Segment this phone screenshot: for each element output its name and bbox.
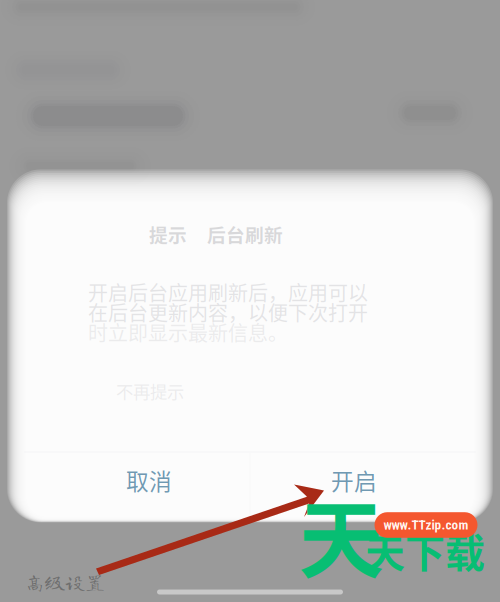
staticText: 天下载	[365, 521, 485, 579]
button[interactable]: 开启	[241, 446, 467, 513]
staticText: 不再提示	[116, 378, 184, 404]
staticText: 提示	[149, 220, 187, 247]
staticText: 时立即显示最新信息。	[88, 317, 288, 346]
staticText: www.TTzip.com	[383, 517, 468, 533]
staticText: 高级设置	[25, 572, 105, 592]
button[interactable]: 取消	[36, 446, 262, 513]
staticText: 取消	[126, 464, 172, 496]
staticText: 天	[298, 472, 383, 596]
staticText: 后台刷新	[207, 220, 283, 247]
staticText: 在后台更新内容，以便下次打开	[88, 297, 368, 326]
staticText: 开启	[331, 464, 377, 496]
staticText: 开启后台应用刷新后，应用可以	[88, 277, 368, 306]
